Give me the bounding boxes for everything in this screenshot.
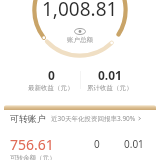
staticText: 0.01 <box>124 137 144 151</box>
staticText: 0 <box>94 137 100 151</box>
button[interactable]: Toggle balance visibility <box>73 28 87 35</box>
staticText: 近30天年化投资回报率3.90% <box>51 114 136 123</box>
button[interactable]: 可转账户 <box>4 113 156 124</box>
staticText: 可转余额（元） <box>10 154 56 160</box>
staticText: 可转账户 <box>10 113 46 124</box>
staticText: 最新收益（元） <box>28 84 74 92</box>
staticText: 账户总额 <box>67 36 93 44</box>
staticText: 0.01 <box>98 67 122 83</box>
staticText: 1,008.81 <box>42 0 118 22</box>
staticText: 756.61 <box>10 135 54 154</box>
staticText: 0 <box>48 67 55 83</box>
staticText: 累计收益（元） <box>87 84 133 92</box>
